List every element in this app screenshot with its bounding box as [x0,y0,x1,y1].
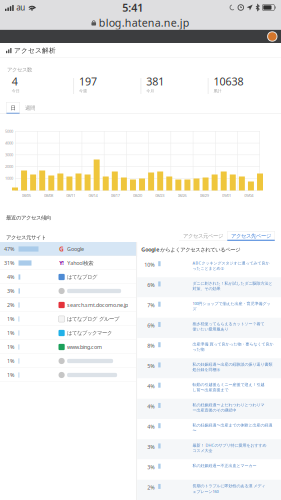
button[interactable]: 6% [137,318,281,338]
staticText: 最近のアクセス傾向 [6,214,51,221]
staticText: った物 [193,347,205,352]
button[interactable]: 4% [137,399,281,419]
staticText: 累計 [214,88,222,93]
staticText: 最新！ DHCのサプリ特に愛用をおすすめ [193,442,267,448]
staticText: 5000 [5,128,13,134]
staticText: 08/05 [22,193,31,198]
button[interactable]: 1% [0,368,136,382]
button[interactable]: 10% [137,257,281,277]
staticText: 4% [7,273,14,281]
staticText: search.smt.docomo.ne.jp [67,301,128,309]
staticText: 私の妊娠経過〜よだれつわりとつわりマ [193,402,265,407]
staticText: www.bing.com [67,343,102,351]
button[interactable]: 8% [137,338,281,358]
staticText: 2% [7,301,14,309]
staticText: 2% [147,484,154,491]
button[interactable]: 5% [137,358,281,378]
staticText: 2000 [5,164,13,169]
staticText: し前〜出産直後まで [193,387,229,392]
button[interactable]: 1% [0,340,136,354]
button[interactable]: 3% [0,284,136,298]
staticText: 1000 [5,176,13,181]
button[interactable]: 4% [137,378,281,399]
button[interactable]: 4% [137,419,281,439]
staticText: 処分録を同梱⑤ [193,367,221,372]
button[interactable]: 31% [0,256,136,270]
staticText: 私の妊娠経過〜出産の経験談の振り返り書類 [193,362,273,367]
staticText: 31% [4,259,14,267]
button[interactable]: アカウント [268,32,277,41]
staticText: 今週 [79,88,87,93]
staticText: G [59,245,64,253]
staticText: Google からよくアクセスされているページ [141,246,240,253]
staticText: 私の妊娠経過〜出産までの体験と出産の経過 [193,423,273,428]
button[interactable]: 2% [0,298,136,312]
button[interactable]: 47% [0,242,136,256]
button[interactable]: 6% [137,277,281,297]
staticText: ったことまとめ① [193,266,225,271]
staticText: 出産準備 買って良かった物・要らなくて良か [193,342,274,347]
staticText: 4000 [5,140,13,145]
staticText: Google [67,245,84,253]
staticText: 3% [147,464,154,471]
staticText: アクセス先ページ [231,233,271,239]
staticText: ABCクッキングスタジオに通ってみて良か [193,260,270,266]
staticText: 6% [147,322,154,329]
staticText: 対策、その効果 [193,286,221,291]
staticText: blog.hatena.ne.jp [99,15,190,30]
button[interactable]: 週間 [21,102,39,114]
staticText: ズ [193,306,197,311]
staticText: 08/23 [155,193,164,198]
button[interactable]: アクセス元ページ [179,231,227,241]
staticText: 08/17 [111,193,120,198]
staticText: 381 [146,74,164,88]
staticText: 3000 [5,152,13,157]
staticText: アクセス数 [7,66,32,73]
staticText: 転勤の引越後もミニー産後で迎え！引越 [193,382,265,387]
staticText: 08/11 [66,193,75,198]
staticText: 100円ショップで揃えた出産・育児準備グッ [193,301,271,306]
staticText: 3% [147,443,154,450]
staticText: 5% [147,362,154,369]
staticText: 08/14 [88,193,97,198]
staticText: 6% [147,281,154,288]
staticText: 4% [147,383,154,390]
staticText: 7% [147,302,154,309]
staticText: ダニに刺された！私が試したダニ駆除方法と [193,281,273,286]
staticText: アクセス元サイト [6,234,46,241]
staticText: ェプレーン160 [193,489,219,494]
staticText: 09/04 [244,193,253,198]
button[interactable]: 4% [0,270,136,284]
button[interactable]: 日 [6,102,20,114]
staticText: コスメ大全 [193,448,213,453]
staticText: 08/29 [200,193,209,198]
staticText: Y! [59,259,64,267]
staticText: アクセス元ページ [183,233,223,239]
staticText: 8% [147,342,154,349]
staticText: 今月 [146,88,154,93]
staticText: 10638 [214,74,244,88]
staticText: 09/01 [222,193,231,198]
button[interactable]: 1% [0,326,136,340]
staticText: au [16,2,25,13]
staticText: 今日 [12,88,20,93]
button[interactable]: 3% [137,459,281,480]
staticText: 抱き枕使ってもらえるカットソー？着て [193,321,265,326]
staticText: 4% [147,403,154,410]
button[interactable]: 7% [137,297,281,318]
staticText: Yahoo!検索 [67,259,93,266]
button[interactable]: アクセス先ページ [227,231,275,241]
button[interactable]: 3% [137,439,281,459]
button[interactable]: 1% [0,312,136,326]
staticText: はてなブログ グループ [67,316,119,322]
staticText: 1% [7,371,14,379]
button[interactable]: 1% [0,354,136,368]
staticText: 10% [144,261,154,268]
button[interactable]: 2% [137,480,281,500]
staticText: 1% [7,315,14,323]
staticText: 1% [7,343,14,351]
staticText: 使いたい愛用服あり [193,327,229,332]
staticText: 週間 [25,105,35,111]
staticText: 08/20 [133,193,142,198]
staticText: 5:41 [122,0,143,15]
